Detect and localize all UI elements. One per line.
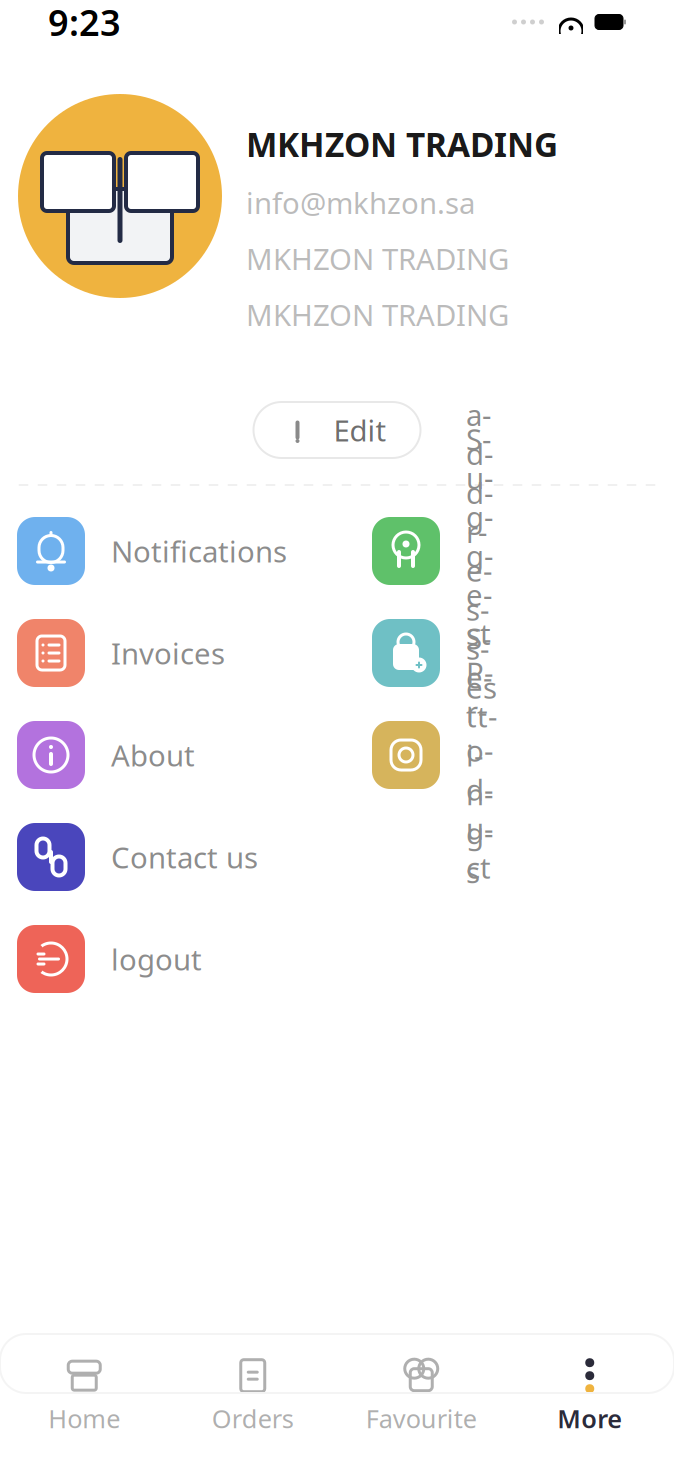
button[interactable]: Favourite [337, 1349, 505, 1445]
button[interactable]: Suggest Product [372, 610, 523, 696]
staticText: Edit [333, 410, 386, 449]
button[interactable]: More [505, 1349, 674, 1445]
button[interactable]: Settings [372, 712, 523, 798]
staticText: About [111, 735, 195, 774]
staticText: Home [48, 1402, 120, 1435]
button[interactable]: addresses [372, 508, 523, 594]
button[interactable]: Contact us [17, 814, 372, 900]
staticText: 9:23 [48, 0, 121, 46]
staticText: Contact us [111, 837, 258, 876]
button[interactable]: Orders [168, 1349, 337, 1445]
button[interactable]: Home [0, 1349, 168, 1445]
staticText: Invoices [111, 633, 225, 672]
staticText: Orders [212, 1402, 294, 1435]
staticText: MKHZON TRADING [246, 122, 558, 166]
staticText: Notifications [111, 531, 287, 570]
button[interactable]: Notifications [17, 508, 372, 594]
button[interactable]: Invoices [17, 610, 372, 696]
staticText: MKHZON TRADING [246, 295, 509, 334]
staticText: More [557, 1402, 622, 1435]
button[interactable]: logout [17, 916, 372, 1002]
button[interactable]: About [17, 712, 372, 798]
staticText: info@mkhzon.sa [246, 183, 475, 222]
staticText: addresses [466, 395, 497, 707]
staticText: Settings [466, 619, 497, 891]
staticText: Suggest Product [466, 419, 493, 887]
staticText: MKHZON TRADING [246, 239, 509, 278]
staticText: Favourite [366, 1402, 477, 1435]
staticText: logout [111, 939, 202, 978]
button[interactable]: Edit [253, 402, 420, 458]
